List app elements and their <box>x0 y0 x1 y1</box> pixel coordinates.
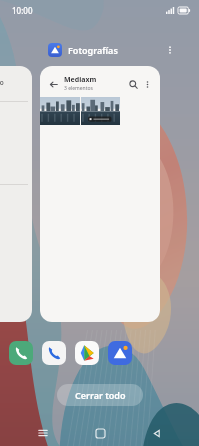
staticText: 10:00 <box>12 5 33 16</box>
button[interactable]: Back <box>143 420 169 446</box>
staticText: 3 elementos <box>64 85 93 92</box>
button[interactable]: Back <box>46 77 60 91</box>
button[interactable]: Home <box>87 420 113 446</box>
button[interactable]: Contactos <box>42 341 66 365</box>
button[interactable]: Fotografías <box>108 341 132 365</box>
button[interactable]: Ajustes recent task <box>0 66 32 322</box>
staticText: Cerrar todo <box>75 389 126 401</box>
button[interactable]: Cerrar todo <box>57 384 143 406</box>
button[interactable]: Fotografías app icon <box>48 43 62 57</box>
staticText: spositivo <box>0 78 4 87</box>
button[interactable]: More options <box>162 42 178 58</box>
button[interactable]: Fotografías recent task <box>40 66 160 322</box>
button[interactable]: Play Store <box>75 341 99 365</box>
button[interactable]: Teléfono <box>9 341 33 365</box>
button[interactable]: Recent apps <box>30 420 56 446</box>
button[interactable]: Photo <box>81 97 120 125</box>
staticText: Mediaxm <box>64 75 97 85</box>
staticText: Fotografías <box>68 44 118 56</box>
button[interactable]: Photo <box>40 97 80 125</box>
button[interactable]: Search <box>126 77 140 91</box>
button[interactable]: More options <box>140 77 154 91</box>
